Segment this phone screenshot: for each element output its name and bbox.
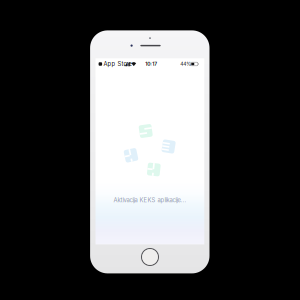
- button[interactable]: Back to App Store: [99, 60, 123, 68]
- staticText: App Store: [104, 60, 132, 67]
- staticText: 44%: [180, 61, 191, 67]
- staticText: Aktivacija KEKS aplikacije...: [113, 197, 186, 204]
- staticText: 10:17: [145, 61, 157, 67]
